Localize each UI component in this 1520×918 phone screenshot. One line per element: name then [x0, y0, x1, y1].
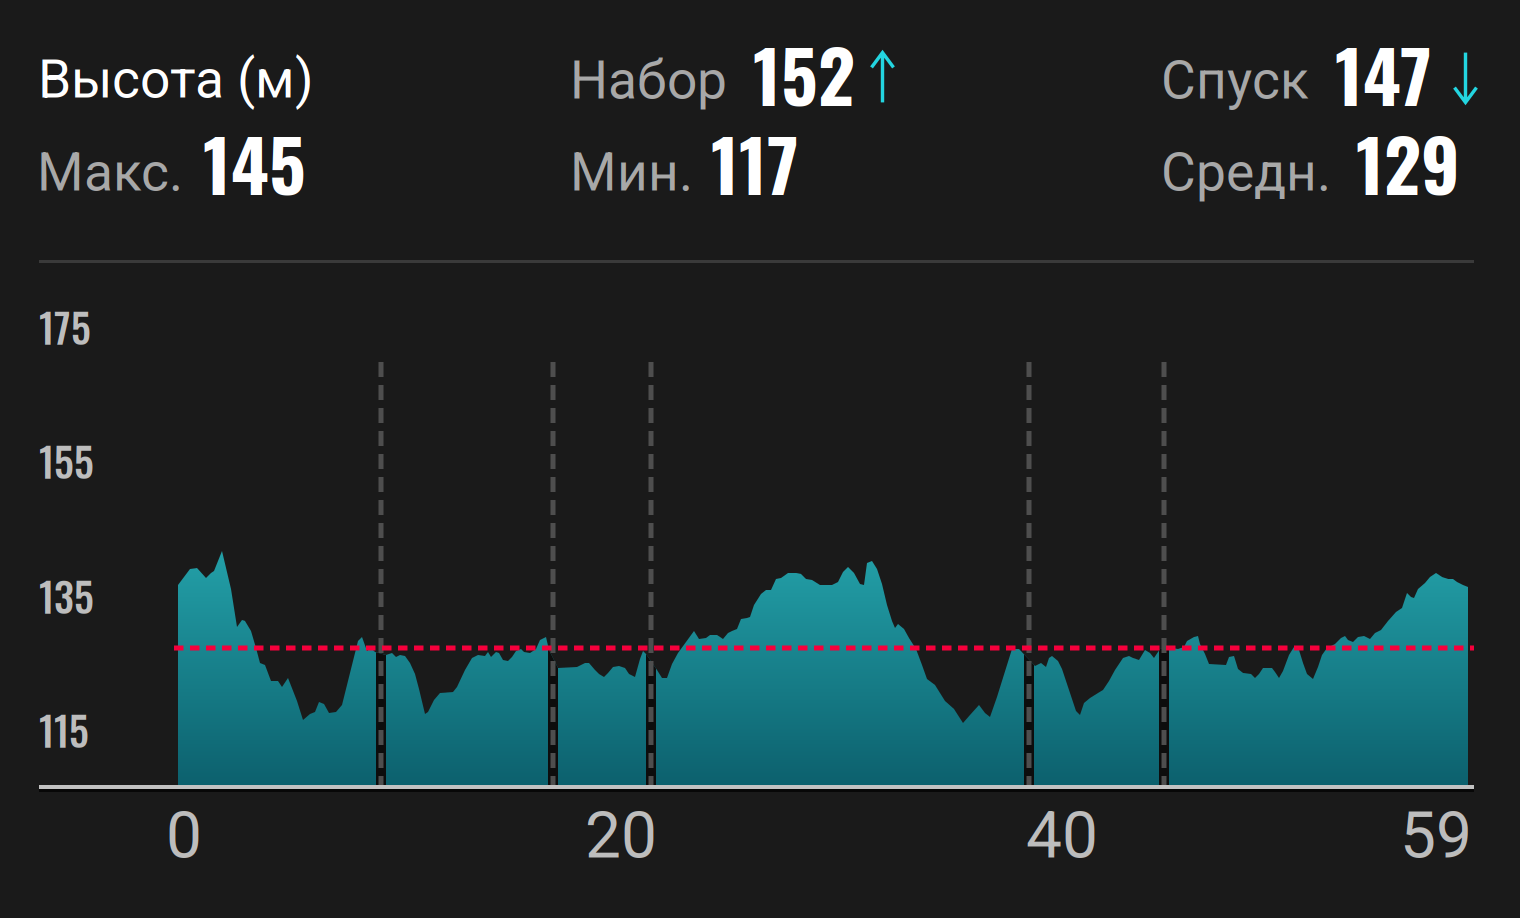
button[interactable]: Спуск	[1154, 40, 1479, 205]
staticText: 0	[166, 798, 202, 873]
staticText: 145	[203, 109, 306, 216]
staticText: 115	[39, 700, 89, 759]
staticText: 40	[1026, 798, 1098, 873]
staticText: Спуск	[1161, 49, 1309, 111]
button[interactable]: Высота (м)	[30, 40, 320, 205]
staticText: 135	[39, 566, 94, 625]
staticText: 175	[39, 297, 91, 356]
staticText: Макс.	[37, 141, 183, 203]
staticText: 129	[1356, 109, 1460, 216]
staticText: Высота (м)	[38, 48, 314, 110]
staticText: 117	[711, 109, 799, 216]
staticText: 147	[1335, 20, 1432, 127]
staticText: Средн.	[1161, 141, 1331, 203]
staticText: Набор	[570, 49, 727, 111]
staticText: 155	[39, 431, 94, 490]
staticText: 59	[1400, 798, 1472, 873]
button[interactable]: Набор	[563, 40, 913, 205]
staticText: 152	[753, 20, 855, 127]
staticText: Мин.	[570, 141, 693, 203]
staticText: 20	[585, 798, 657, 873]
